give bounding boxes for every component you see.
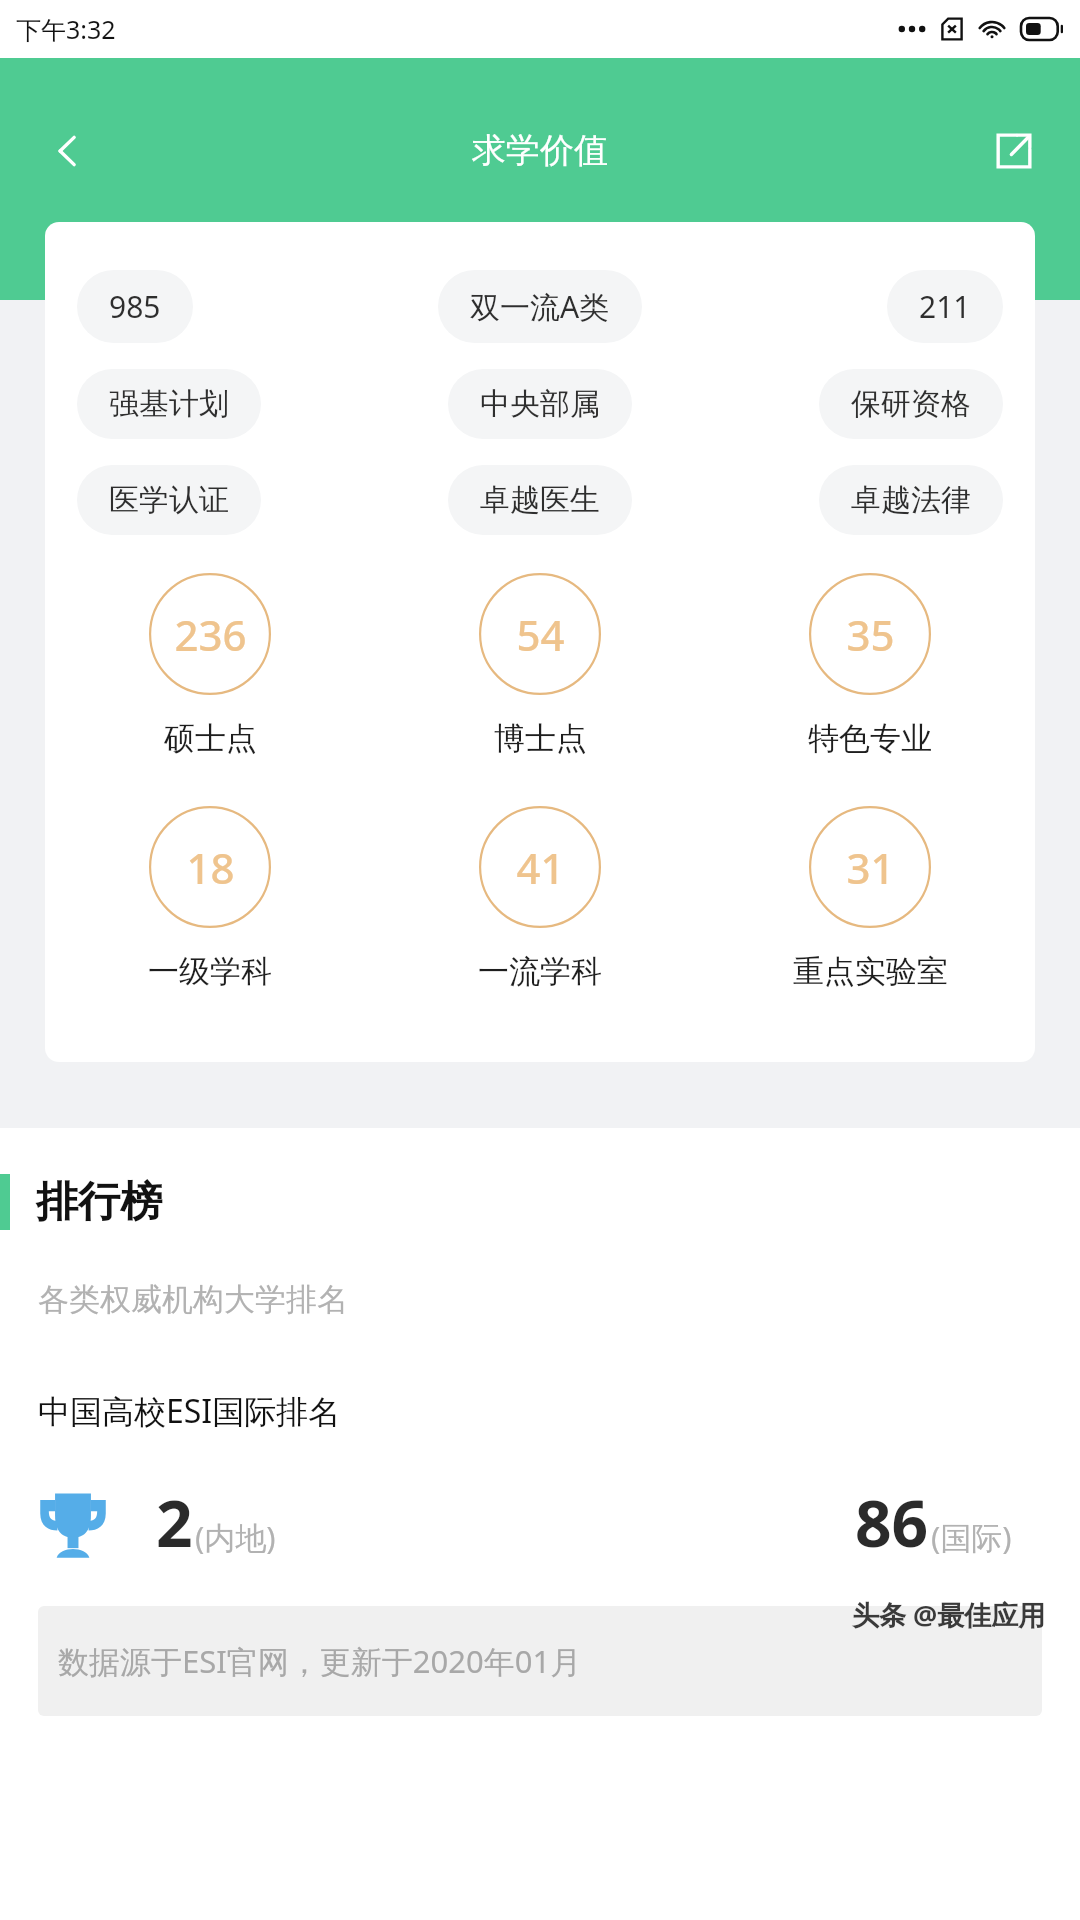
button[interactable]: 双一流A类 [438,270,642,343]
button[interactable]: 强基计划 [77,369,261,439]
button[interactable]: 中央部属 [448,369,632,439]
button[interactable]: 保研资格 [819,369,1003,439]
button[interactable]: 211 [887,270,1003,343]
button[interactable]: 41 [375,806,705,991]
button[interactable]: 35 [705,573,1035,758]
staticText: 下午3:32 [16,12,116,46]
staticText: 排行榜 [36,1176,162,1229]
staticText: 一级学科 [148,952,272,991]
button[interactable]: 31 [705,806,1035,991]
staticText: 54 [516,606,565,663]
staticText: (内地) [195,1516,276,1558]
staticText: 236 [174,606,247,663]
button[interactable]: Share [974,111,1054,191]
staticText: 86 [855,1479,929,1566]
button[interactable]: 985 [77,270,193,343]
staticText: 求学价值 [472,129,608,172]
staticText: 211 [919,286,971,327]
button[interactable]: 54 [375,573,705,758]
staticText: 特色专业 [808,719,932,758]
staticText: 31 [846,839,895,896]
staticText: 医学认证 [109,481,229,519]
button[interactable]: 18 [45,806,375,991]
staticText: 数据源于ESI官网，更新于2020年01月 [58,1640,582,1682]
button[interactable]: 236 [45,573,375,758]
staticText: 博士点 [494,719,587,758]
button[interactable]: 卓越法律 [819,465,1003,535]
staticText: 各类权威机构大学排名 [38,1280,348,1319]
staticText: 35 [846,606,895,663]
staticText: 18 [186,839,235,896]
staticText: 中国高校ESI国际排名 [38,1389,341,1433]
staticText: 硕士点 [164,719,257,758]
staticText: 强基计划 [109,385,229,423]
staticText: 头条 @最佳应用 [852,1596,1046,1633]
staticText: 重点实验室 [793,952,948,991]
staticText: 一流学科 [478,952,602,991]
staticText: 中央部属 [480,385,600,423]
staticText: 双一流A类 [470,286,610,327]
staticText: 2 [156,1479,193,1566]
staticText: 41 [516,839,565,896]
button[interactable]: Back [26,109,110,193]
staticText: 卓越法律 [851,481,971,519]
button[interactable]: 卓越医生 [448,465,632,535]
staticText: 卓越医生 [480,481,600,519]
staticText: (国际) [931,1516,1012,1558]
button[interactable]: 医学认证 [77,465,261,535]
staticText: 985 [109,286,161,327]
staticText: 保研资格 [851,385,971,423]
